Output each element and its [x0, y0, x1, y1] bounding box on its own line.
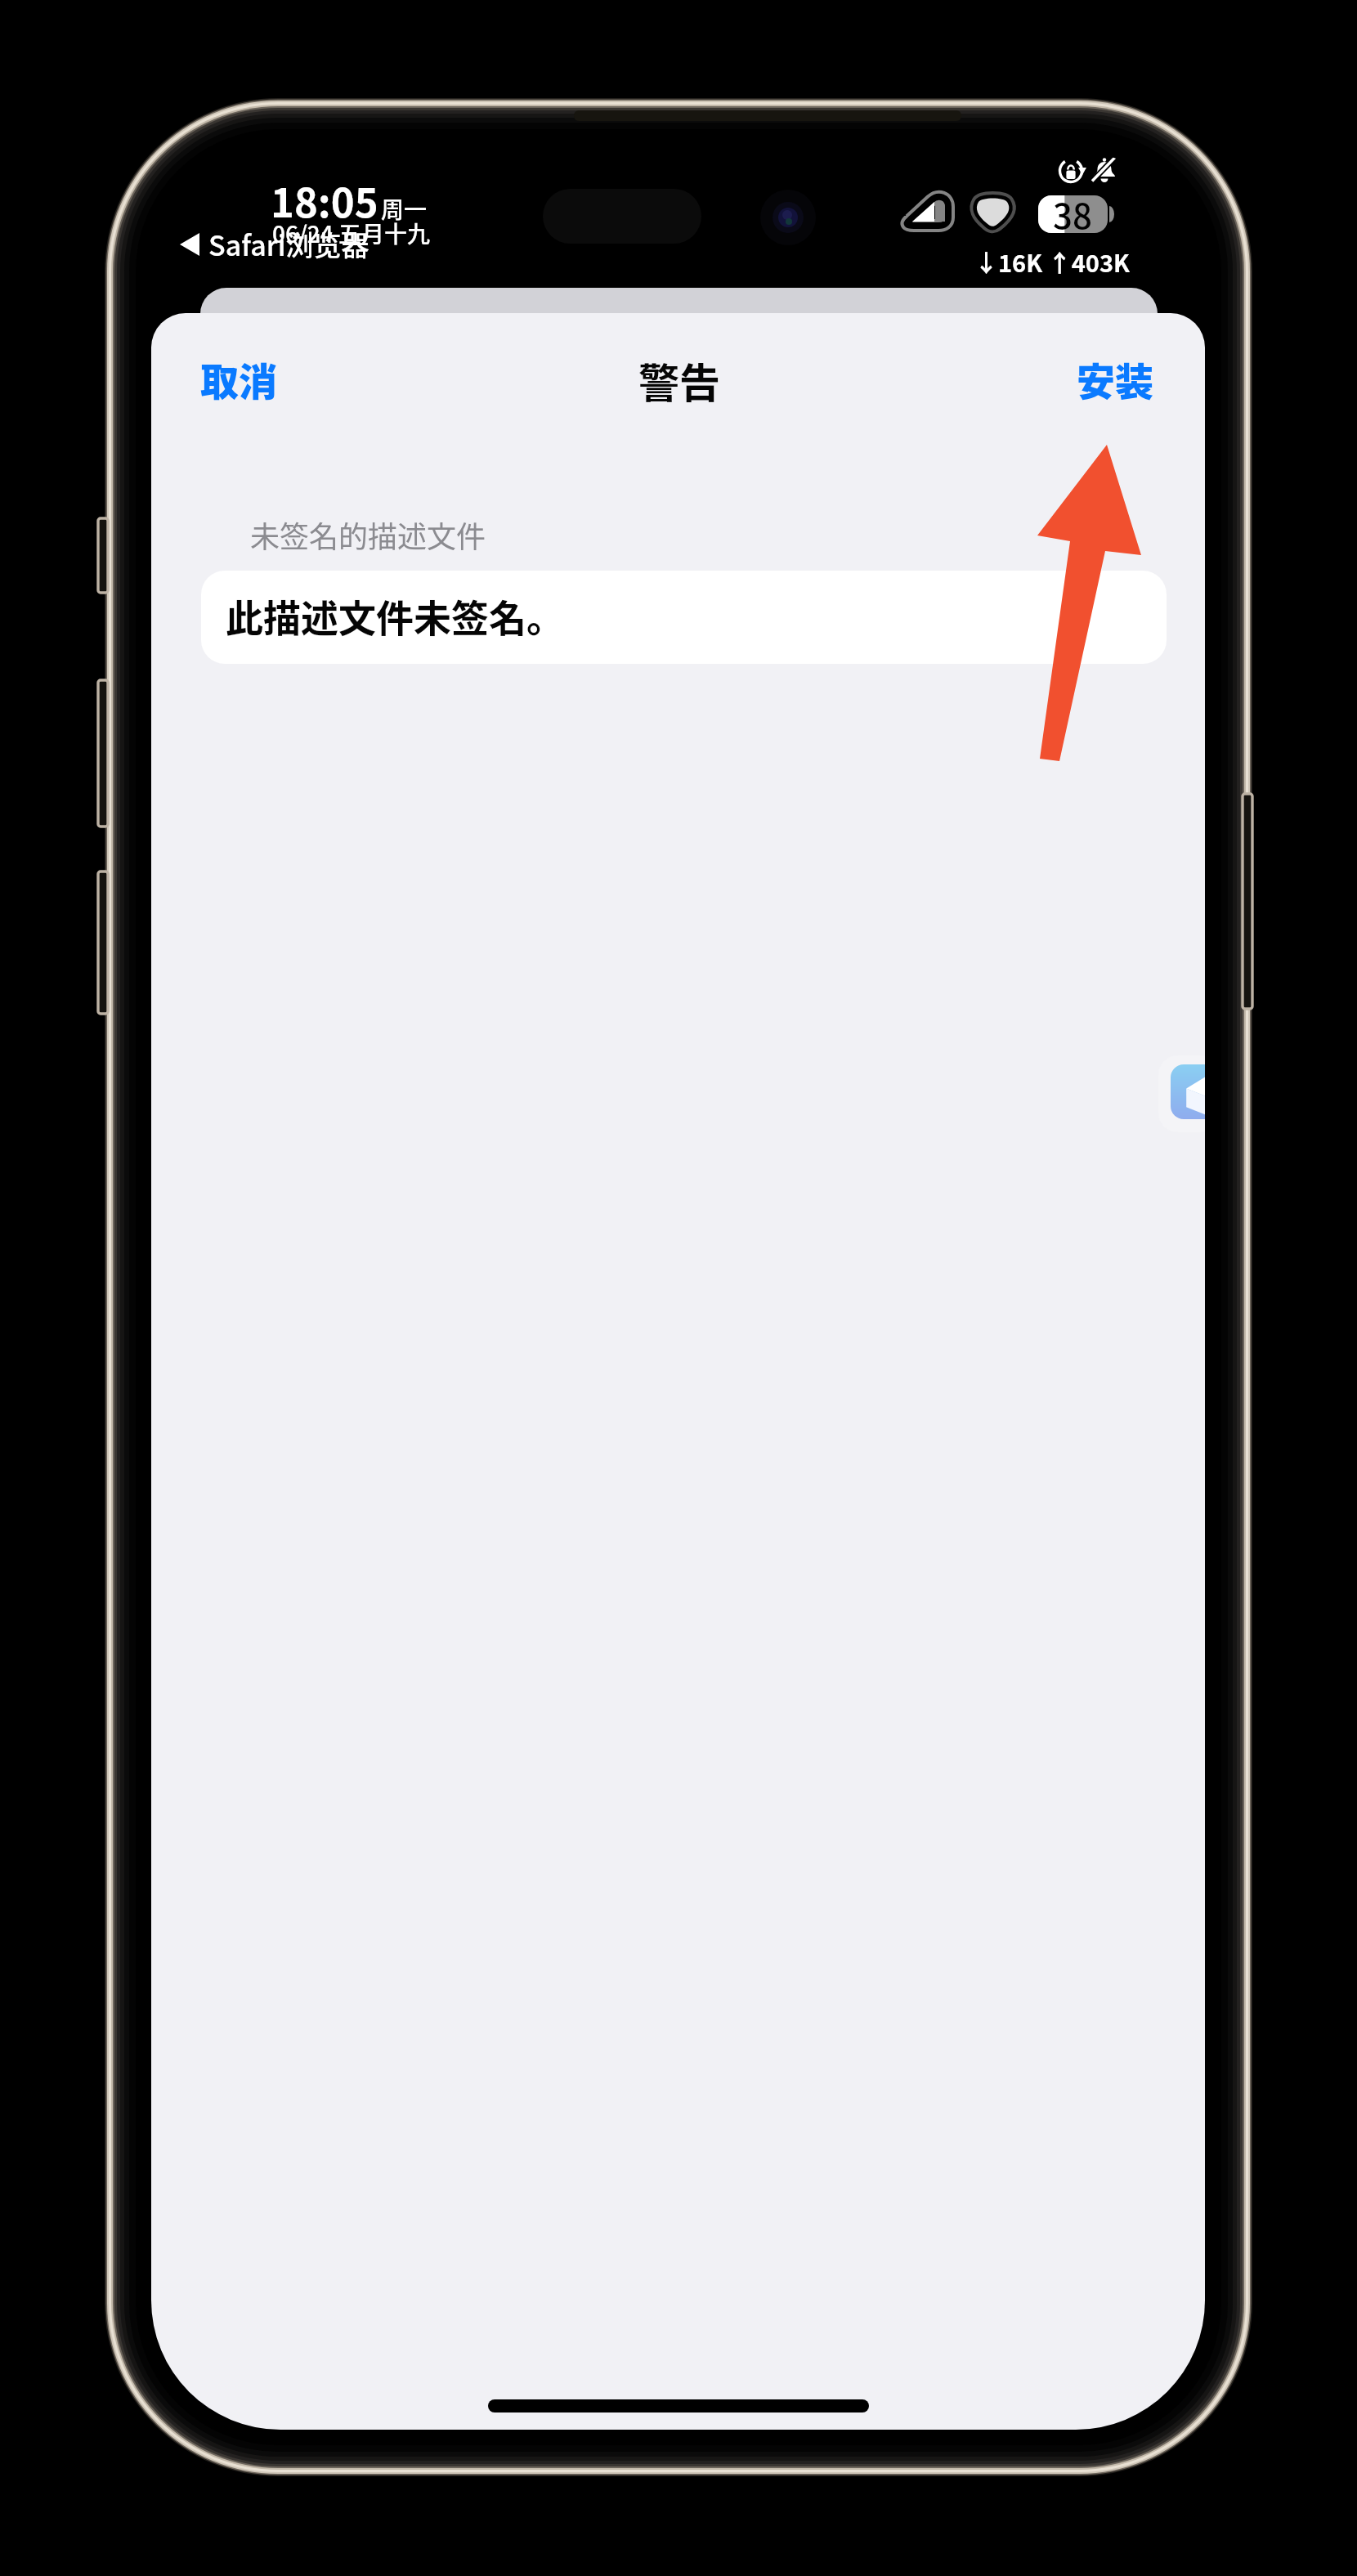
- staticText: 安装: [1077, 351, 1153, 406]
- staticText: 警告: [638, 351, 720, 410]
- button[interactable]: Floating shortcut: [1158, 1055, 1205, 1132]
- staticText: 38: [1053, 189, 1092, 239]
- staticText: 此描述文件未签名。: [226, 589, 564, 643]
- button[interactable]: 此描述文件未签名。: [201, 571, 1167, 664]
- staticText: 取消: [200, 351, 277, 406]
- staticText: Safari浏览器: [208, 224, 369, 264]
- button[interactable]: Safari浏览器: [180, 224, 361, 264]
- staticText: 06/24 五月十九: [272, 217, 431, 250]
- staticText: 周一: [381, 192, 428, 226]
- staticText: 未签名的描述文件: [250, 513, 486, 556]
- button[interactable]: 取消: [181, 336, 297, 421]
- staticText: ↓16K ↑403K: [974, 244, 1130, 279]
- staticText: 18:05: [271, 171, 378, 229]
- button[interactable]: 安装: [1057, 336, 1173, 421]
